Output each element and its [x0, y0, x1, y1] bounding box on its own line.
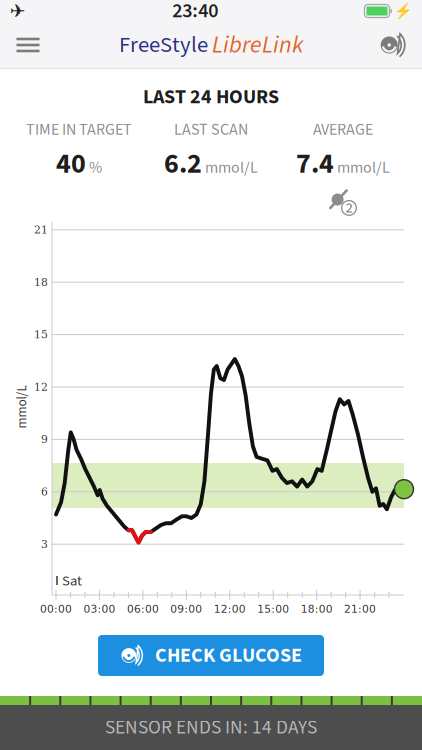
staticText: 00:00 [40, 603, 72, 615]
staticText: ✈ [10, 0, 26, 22]
staticText: ⚡ [394, 3, 412, 19]
staticText: 40 [56, 144, 86, 184]
button[interactable]: Scan sensor [366, 22, 422, 68]
staticText: 6 [41, 486, 48, 498]
staticText: mmol/L [337, 156, 390, 179]
staticText: LAST SCAN [174, 118, 248, 141]
button[interactable]: CHECK GLUCOSE [98, 635, 324, 676]
staticText: AVERAGE [313, 118, 373, 141]
staticText: CHECK GLUCOSE [155, 641, 302, 670]
staticText: 9 [41, 433, 48, 446]
button[interactable]: Menu [0, 22, 56, 68]
staticText: 15:00 [257, 603, 289, 615]
staticText: 15 [34, 328, 48, 341]
staticText: TIME IN TARGET [26, 118, 132, 141]
staticText: SENSOR ENDS IN: 14 DAYS [105, 714, 317, 741]
staticText: 23:40 [172, 0, 218, 25]
staticText: 3 [41, 538, 48, 550]
staticText: 21 [34, 224, 48, 236]
staticText: % [89, 156, 102, 179]
staticText: 2 [345, 197, 352, 218]
staticText: 18:00 [301, 603, 333, 615]
staticText: FreeStyle [119, 29, 208, 61]
staticText: 6.2 [164, 144, 202, 184]
staticText: Sat [62, 571, 82, 591]
staticText: 18 [34, 276, 48, 288]
staticText: 09:00 [170, 603, 202, 615]
staticText: 21:00 [344, 603, 376, 615]
staticText: LAST 24 HOURS [143, 83, 279, 111]
staticText: 7.4 [296, 144, 334, 184]
staticText: mmol/L [205, 156, 258, 179]
staticText: LibreLink [212, 28, 303, 62]
staticText: 06:00 [127, 603, 159, 615]
staticText: 03:00 [83, 603, 115, 615]
staticText: 12:00 [214, 603, 246, 615]
staticText: mmol/L [0, 397, 43, 416]
staticText: 12 [34, 381, 48, 393]
